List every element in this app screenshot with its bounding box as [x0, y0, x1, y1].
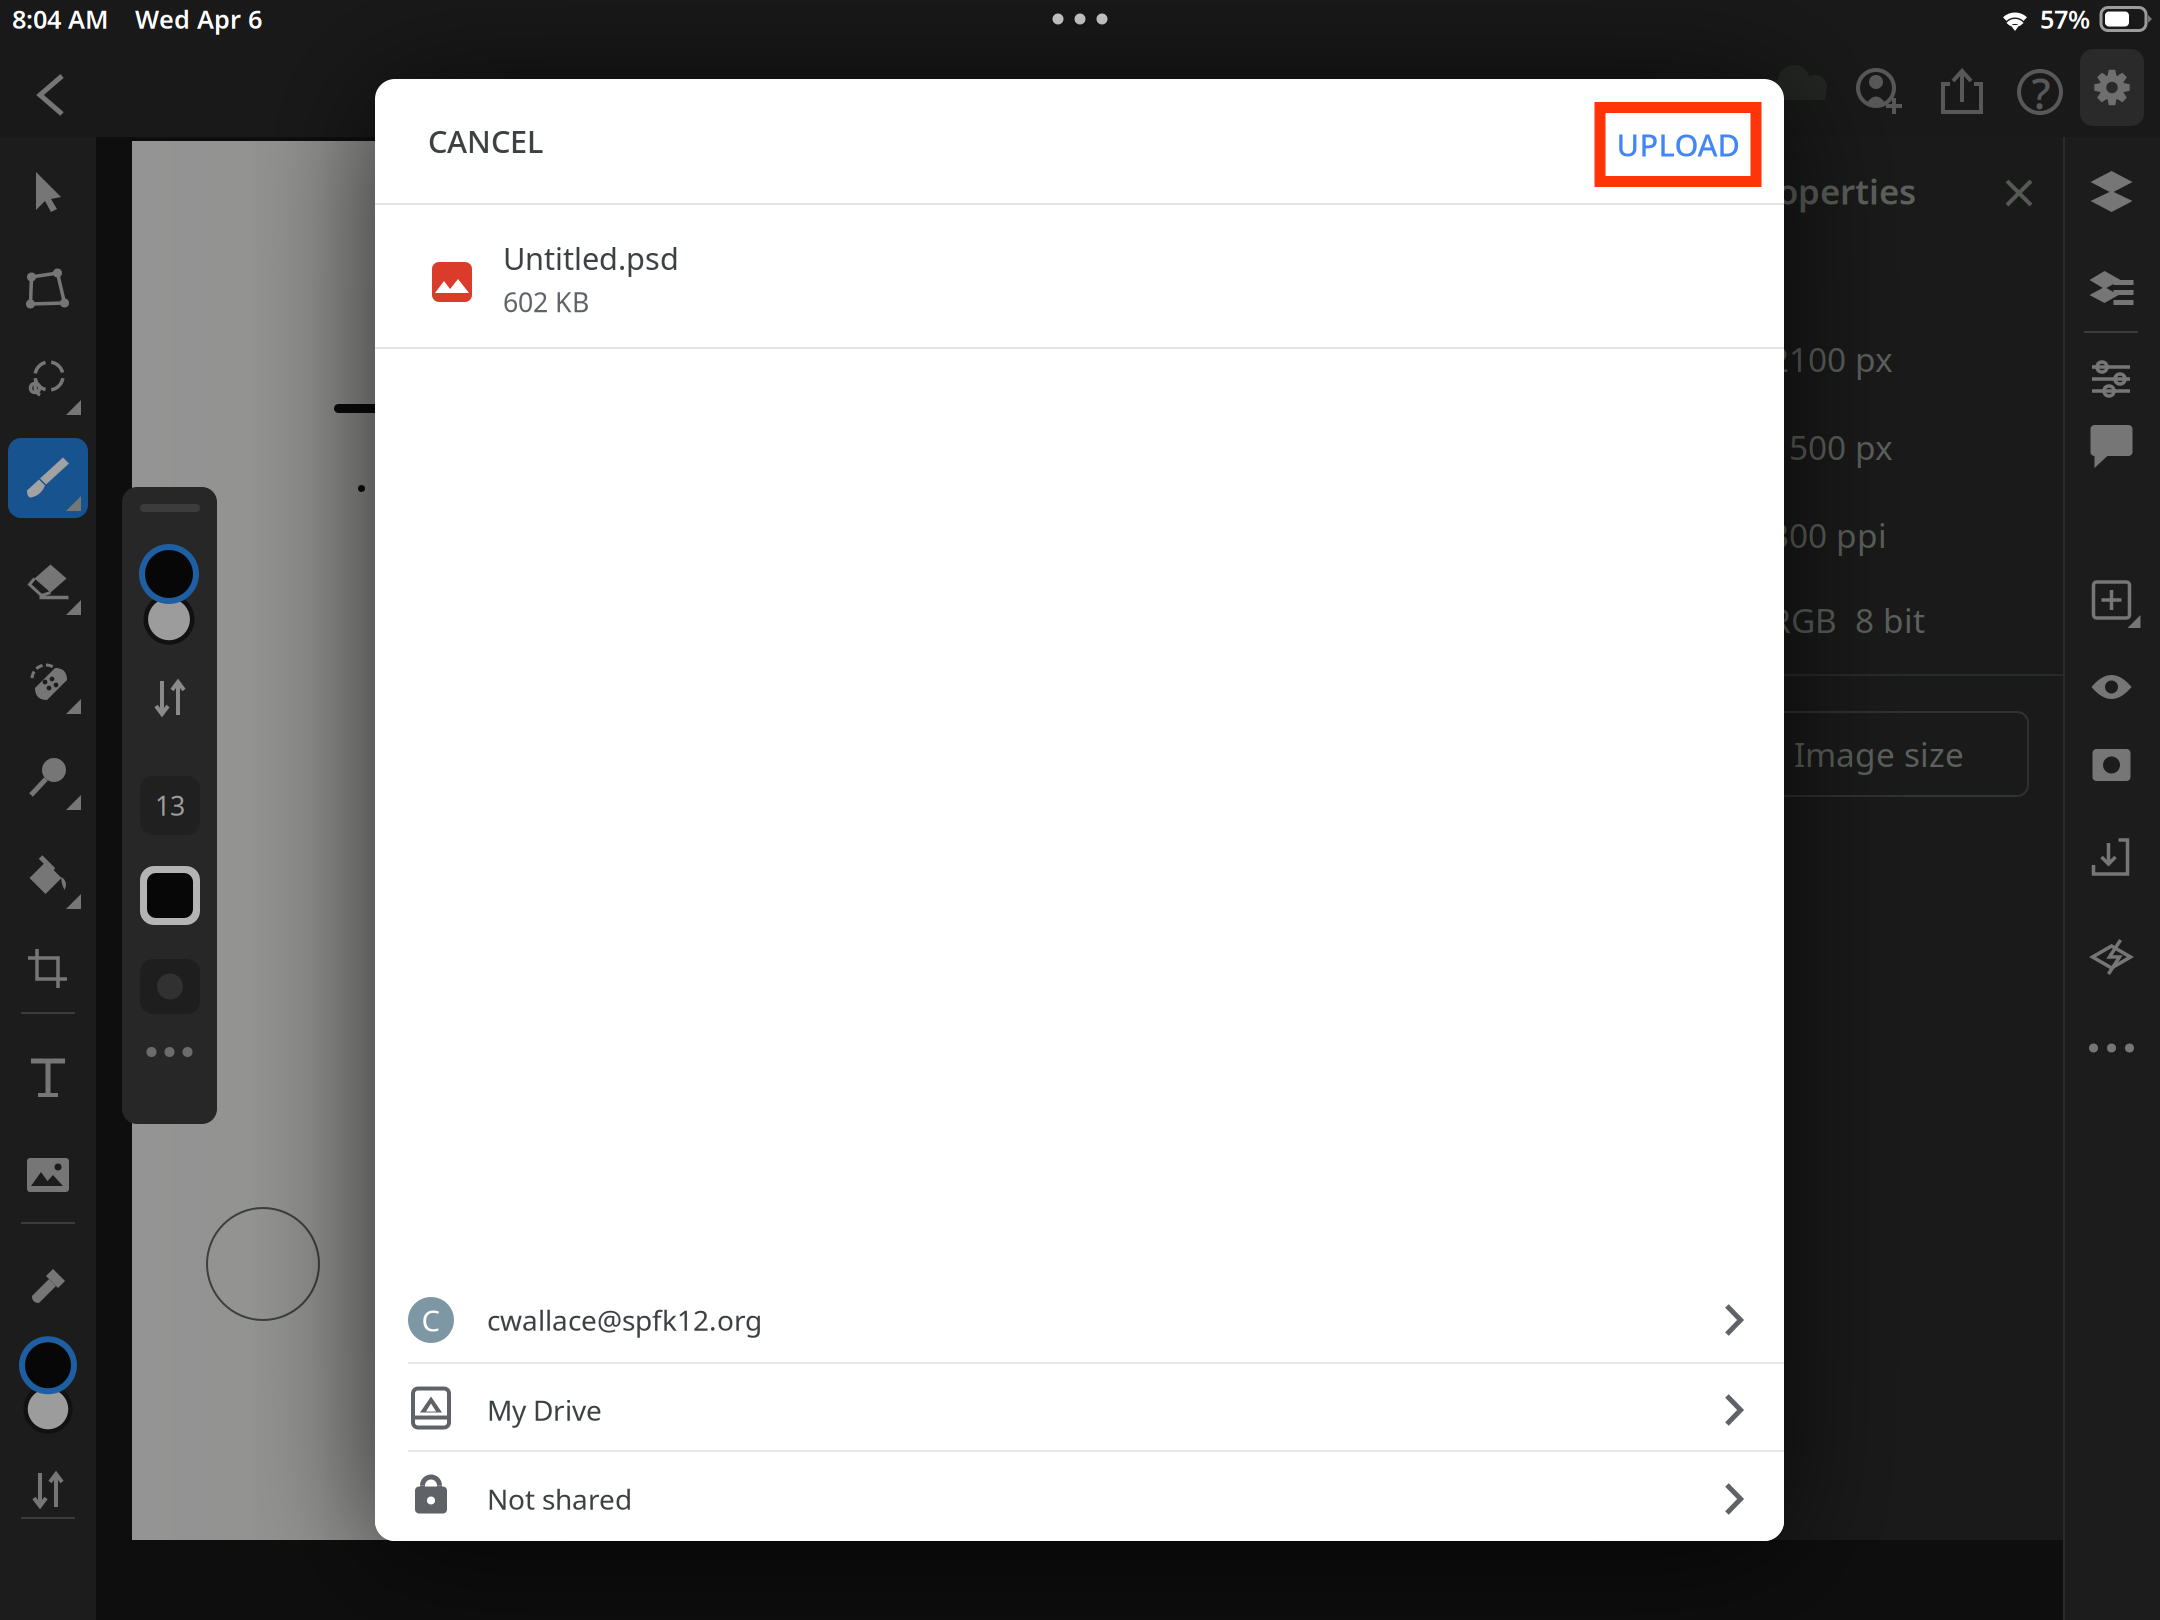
- button[interactable]: Select: [0, 334, 96, 430]
- button[interactable]: CANCEL: [375, 79, 658, 203]
- button[interactable]: Layer list: [2063, 241, 2160, 337]
- staticText: CANCEL: [428, 121, 543, 161]
- button[interactable]: Place: [2063, 810, 2160, 906]
- staticText: cwallace@spfk12.org: [487, 1301, 762, 1339]
- staticText: C: [421, 1300, 440, 1339]
- staticText: 602 KB: [503, 284, 589, 320]
- button[interactable]: Brush colour: [140, 866, 200, 925]
- button[interactable]: UPLOAD: [1578, 102, 1778, 187]
- staticText: Not shared: [487, 1480, 632, 1518]
- button[interactable]: Adjustments: [2063, 331, 2160, 427]
- button[interactable]: Swap colours: [0, 1442, 96, 1538]
- staticText: Properties: [1742, 168, 1916, 214]
- button[interactable]: Smudge: [0, 729, 96, 825]
- staticText: ?: [2031, 65, 2050, 121]
- button[interactable]: More: [2063, 1000, 2160, 1096]
- button[interactable]: More brush options: [122, 1032, 217, 1072]
- staticText: Untitled.psd: [503, 238, 679, 278]
- button[interactable]: Fill: [0, 828, 96, 924]
- staticText: 13: [155, 788, 185, 823]
- button[interactable]: Visibility: [2063, 639, 2160, 735]
- button[interactable]: Layer mask: [2063, 717, 2160, 813]
- staticText: Wed Apr 6: [135, 2, 262, 36]
- button[interactable]: Crop: [0, 921, 96, 1017]
- button[interactable]: Effects: [2063, 910, 2160, 1006]
- button[interactable]: Brush size 13: [140, 776, 200, 835]
- button[interactable]: Eyedropper: [0, 1240, 96, 1336]
- button[interactable]: Help: [2008, 60, 2074, 126]
- staticText: 8:04 AM: [12, 2, 109, 36]
- button[interactable]: Brush: [0, 430, 96, 526]
- button[interactable]: Back: [22, 66, 80, 124]
- staticText: My Drive: [487, 1391, 602, 1429]
- button[interactable]: Share: [1930, 60, 1996, 126]
- staticText: UPLOAD: [1616, 124, 1739, 165]
- button[interactable]: Close properties: [1986, 160, 2052, 226]
- button[interactable]: Settings: [2080, 49, 2144, 126]
- button[interactable]: Add layer: [2063, 552, 2160, 648]
- staticText: RGB 8 bit: [1770, 598, 1925, 642]
- button[interactable]: Invite people: [1848, 60, 1914, 126]
- staticText: 300 ppi: [1770, 513, 1887, 557]
- button[interactable]: Layers: [2063, 144, 2160, 240]
- button[interactable]: Brush hardness: [140, 959, 200, 1014]
- staticText: 2100 px: [1770, 337, 1893, 381]
- button[interactable]: Comments: [2063, 398, 2160, 494]
- staticText: 57%: [2040, 2, 2090, 36]
- button[interactable]: Transform: [0, 241, 96, 337]
- button[interactable]: Move: [0, 144, 96, 240]
- button[interactable]: My Drive: [375, 1366, 1784, 1454]
- button[interactable]: Not shared: [375, 1455, 1784, 1543]
- button[interactable]: Foreground and background colour: [0, 1333, 96, 1437]
- button[interactable]: C: [375, 1276, 1784, 1364]
- button[interactable]: Place image: [0, 1127, 96, 1223]
- staticText: 1500 px: [1770, 425, 1893, 469]
- staticText: Image size: [1794, 732, 1964, 776]
- button[interactable]: Eraser: [0, 534, 96, 630]
- button[interactable]: Spot heal: [0, 633, 96, 729]
- button[interactable]: Type: [0, 1030, 96, 1126]
